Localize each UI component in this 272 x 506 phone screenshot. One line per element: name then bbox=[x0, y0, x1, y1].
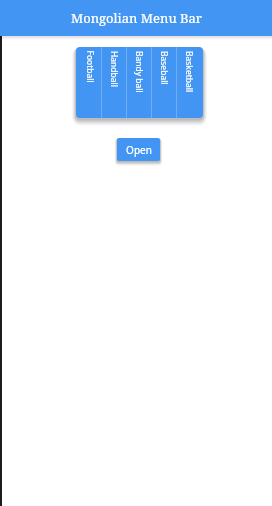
staticText: Mongolian Menu Bar bbox=[71, 9, 202, 27]
staticText: Open bbox=[126, 143, 152, 157]
staticText: Bandy ball bbox=[133, 51, 145, 93]
button[interactable]: Basketball bbox=[176, 47, 201, 118]
staticText: Football bbox=[83, 50, 95, 83]
staticText: Basketball bbox=[183, 51, 195, 93]
staticText: Baseball bbox=[158, 51, 170, 85]
button[interactable]: Bandy ball bbox=[126, 47, 151, 118]
button[interactable]: Handball bbox=[101, 47, 126, 118]
button[interactable]: Football bbox=[76, 47, 101, 118]
button[interactable]: Open bbox=[117, 138, 160, 161]
button[interactable]: Baseball bbox=[151, 47, 176, 118]
staticText: Handball bbox=[108, 51, 120, 87]
